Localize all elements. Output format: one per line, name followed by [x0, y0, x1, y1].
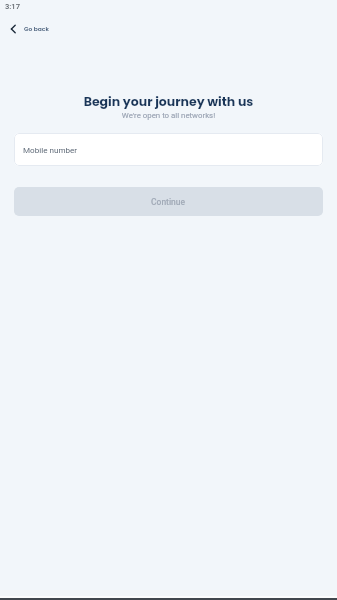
staticText: Go back — [24, 25, 49, 33]
staticText: Mobile number — [23, 145, 78, 154]
button[interactable]: Mobile number — [14, 133, 323, 166]
staticText: Begin your journey with us — [0, 93, 337, 110]
staticText: Continue — [151, 197, 186, 207]
other: Go back — [7, 23, 17, 35]
button[interactable]: Continue — [14, 187, 323, 216]
button[interactable]: Go back — [0, 20, 57, 38]
staticText: 3:17 — [5, 2, 20, 11]
staticText: We're open to all networks! — [0, 111, 337, 120]
